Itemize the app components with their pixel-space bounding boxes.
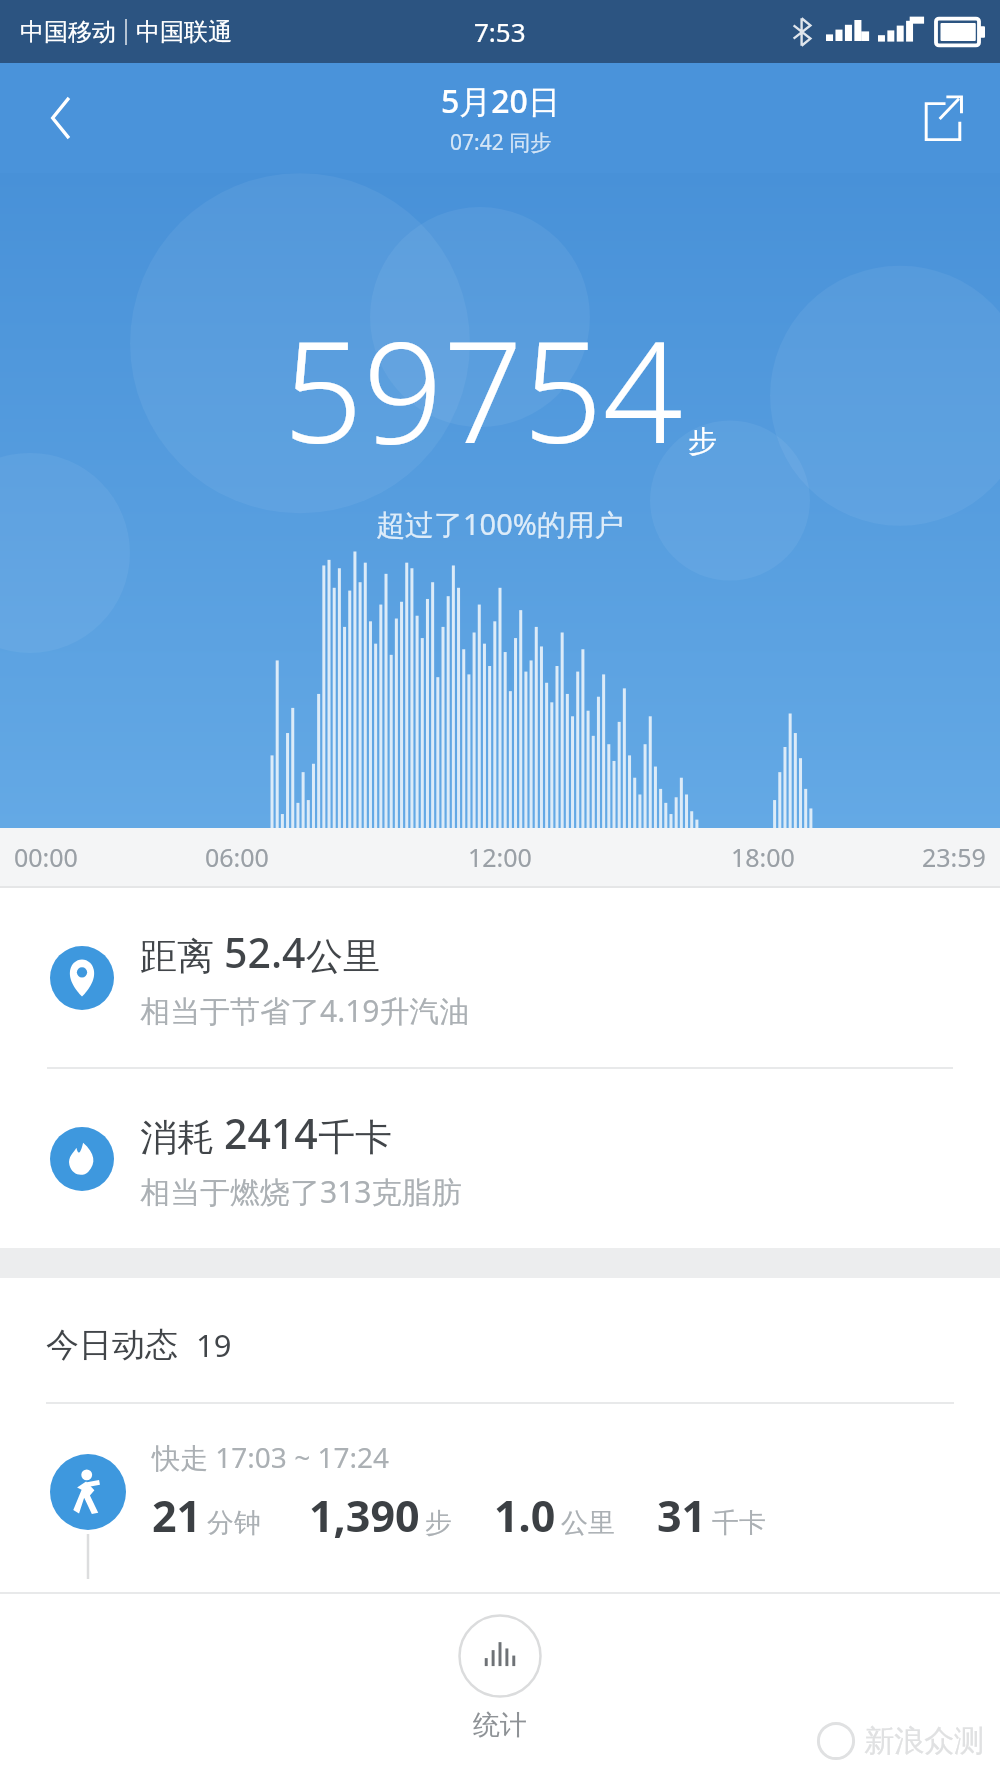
button[interactable]: 快走 17:03 ~ 17:24: [0, 1404, 1000, 1579]
staticText: 公里: [561, 1506, 615, 1540]
staticText: 距离: [140, 929, 224, 980]
staticText: 步: [688, 423, 717, 460]
staticText: 7:53: [474, 14, 526, 49]
staticText: 快走 17:03 ~ 17:24: [152, 1438, 389, 1476]
staticText: 59754: [283, 293, 683, 484]
staticText: 中国联通: [136, 17, 232, 47]
staticText: 步: [425, 1506, 452, 1540]
staticText: 今日动态: [46, 1324, 178, 1366]
staticText: 12:00: [468, 840, 532, 874]
staticText: 公里: [306, 933, 380, 980]
staticText: 相当于节省了4.19升汽油: [140, 990, 470, 1031]
staticText: 2414: [224, 1105, 318, 1161]
button[interactable]: Share: [912, 87, 974, 149]
staticText: 千卡: [318, 1114, 392, 1161]
staticText: 21: [152, 1486, 202, 1545]
staticText: 分钟: [207, 1506, 261, 1540]
button[interactable]: Back: [32, 89, 90, 147]
staticText: 消耗: [140, 1110, 224, 1161]
staticText: 1,390: [309, 1486, 420, 1545]
staticText: 18:00: [731, 840, 795, 874]
staticText: 31: [657, 1486, 707, 1545]
staticText: 00:00: [14, 840, 78, 874]
staticText: 06:00: [205, 840, 269, 874]
button[interactable]: 今日动态: [0, 1278, 1000, 1402]
staticText: 超过了100%的用户: [376, 504, 624, 544]
staticText: 52.4: [224, 924, 306, 980]
staticText: 5月20日: [441, 79, 560, 123]
staticText: 中国移动: [20, 17, 116, 47]
staticText: 23:59: [922, 840, 986, 874]
button[interactable]: 统计: [458, 1614, 542, 1742]
staticText: 07:42 同步: [450, 128, 552, 157]
staticText: 19: [196, 1324, 232, 1366]
button[interactable]: 消耗: [0, 1069, 1000, 1248]
staticText: 相当于燃烧了313克脂肪: [140, 1171, 462, 1212]
staticText: 新浪众测: [864, 1722, 984, 1760]
staticText: 统计: [473, 1708, 527, 1742]
staticText: 千卡: [712, 1506, 766, 1540]
staticText: 1.0: [494, 1486, 556, 1545]
button[interactable]: 距离: [0, 888, 1000, 1067]
